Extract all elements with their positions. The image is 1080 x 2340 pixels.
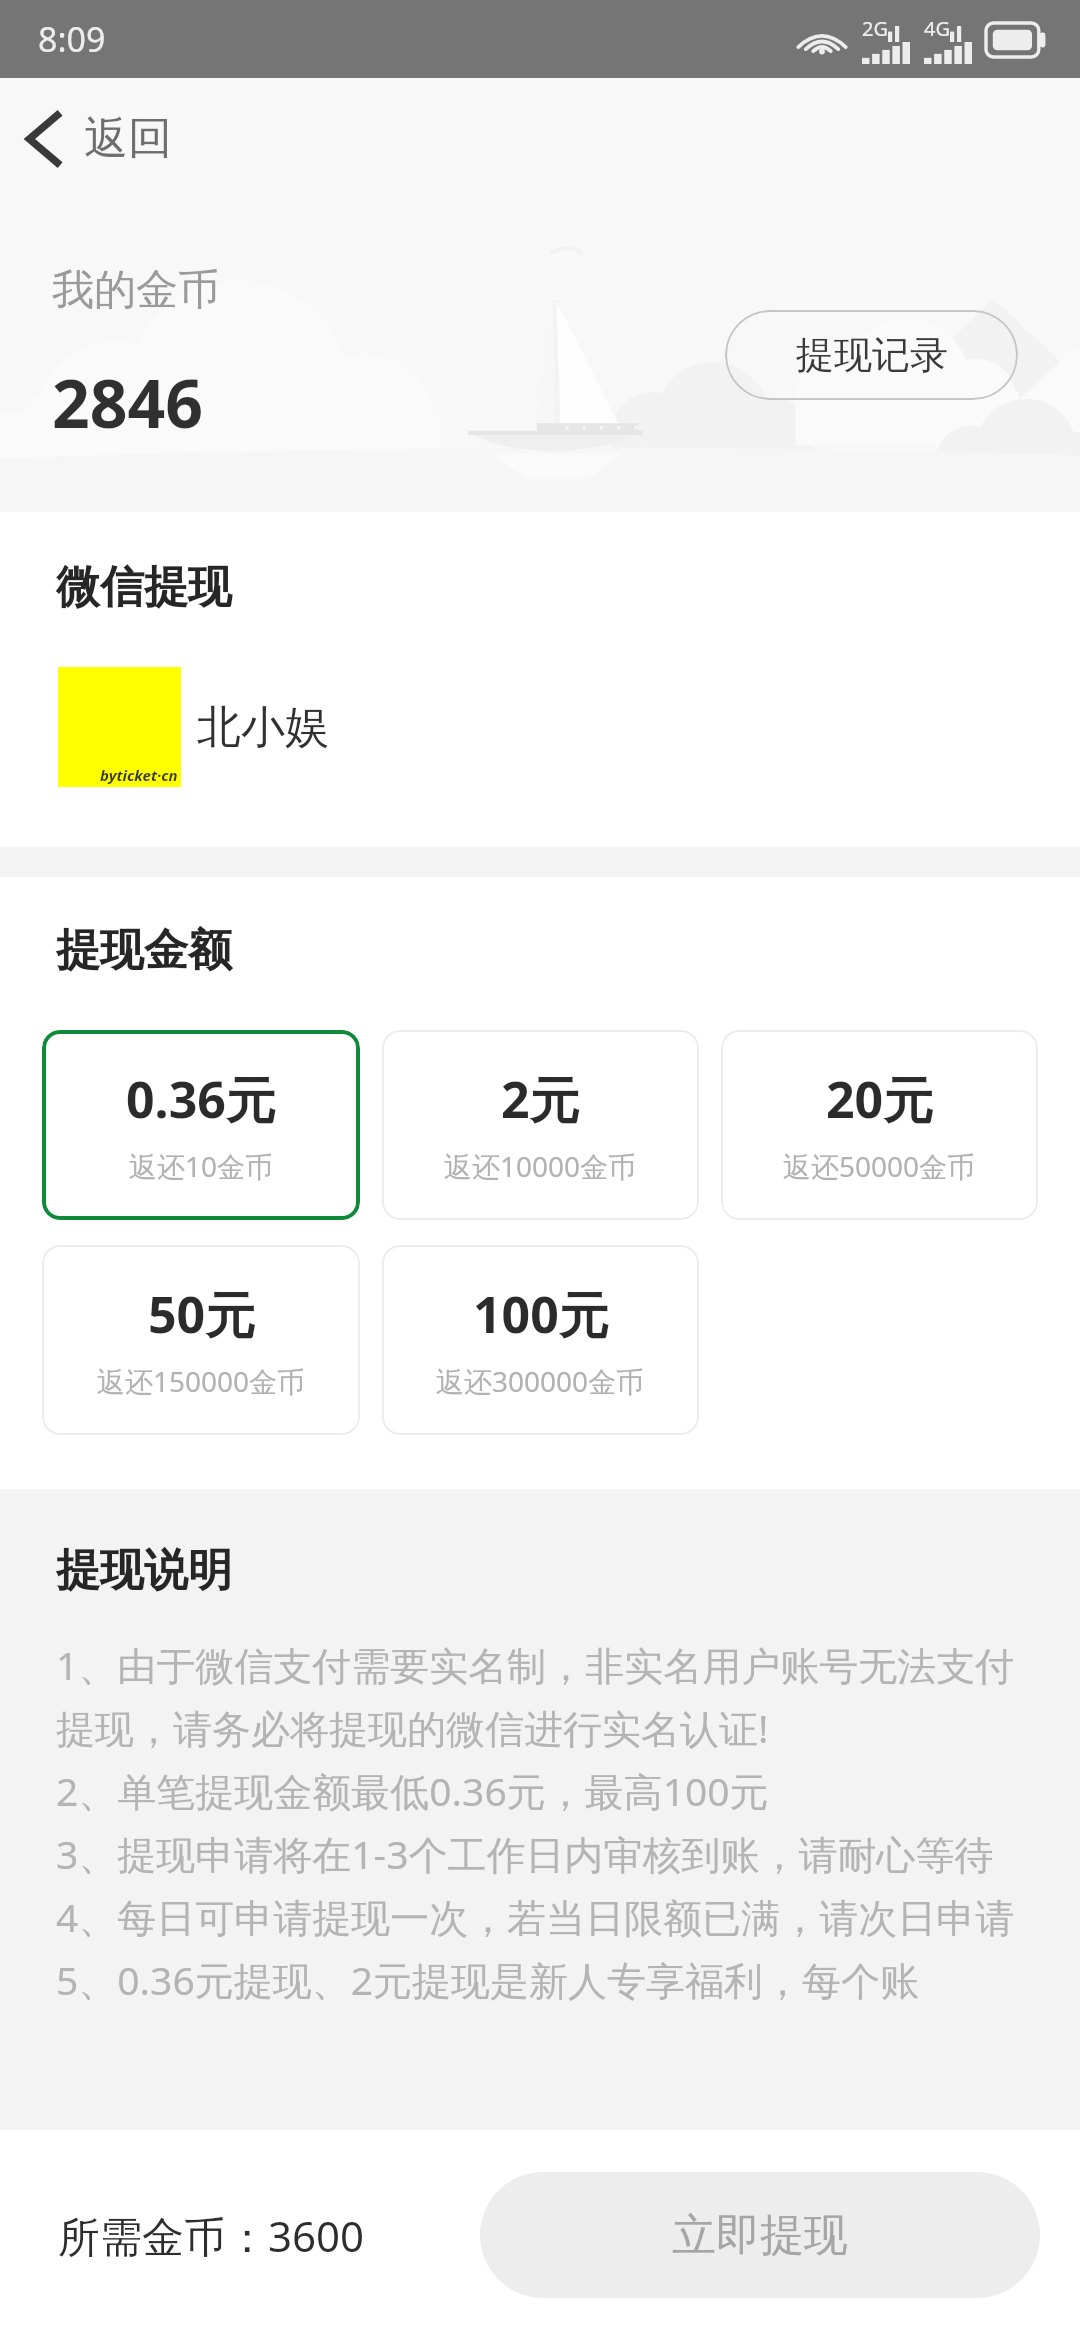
staticText: 微信提现 — [56, 560, 232, 615]
staticText: 2846 — [52, 357, 204, 447]
staticText: 返还50000金币 — [783, 1147, 976, 1185]
staticText: 2元 — [501, 1065, 580, 1133]
staticText: 8:09 — [38, 16, 106, 62]
staticText: 4G — [924, 15, 950, 42]
button[interactable]: 返回 — [0, 97, 202, 180]
staticText: 100元 — [473, 1280, 609, 1348]
button[interactable]: 100元 — [382, 1245, 699, 1435]
staticText: 返还150000金币 — [97, 1362, 306, 1400]
staticText: 返还10金币 — [129, 1147, 274, 1185]
button[interactable]: 2元 — [382, 1030, 699, 1220]
staticText: 返还10000金币 — [444, 1147, 637, 1185]
staticText: 我的金币 — [52, 264, 220, 317]
staticText: 提现金额 — [56, 923, 232, 978]
button[interactable]: 0.36元 — [42, 1030, 360, 1220]
button[interactable]: 立即提现 — [480, 2172, 1040, 2298]
staticText: 1、由于微信支付需要实名制，非实名用户账号无法支付提现，请务必将提现的微信进行实… — [56, 1638, 1050, 2006]
staticText: 提现说明 — [56, 1543, 232, 1598]
staticText: 0.36元 — [126, 1065, 276, 1133]
staticText: 返回 — [84, 111, 172, 166]
button[interactable]: 提现记录 — [725, 310, 1018, 400]
staticText: 50元 — [148, 1280, 256, 1348]
staticText: 所需金币：3600 — [58, 2207, 365, 2264]
staticText: 20元 — [826, 1065, 934, 1133]
button[interactable]: 50元 — [42, 1245, 360, 1435]
button[interactable]: 20元 — [721, 1030, 1038, 1220]
staticText: 提现记录 — [796, 331, 948, 379]
staticText: 返还300000金币 — [436, 1362, 645, 1400]
staticText: 2G — [862, 15, 888, 42]
staticText: 北小娱 — [197, 700, 329, 755]
staticText: 立即提现 — [672, 2208, 848, 2263]
button[interactable]: byticket·cn — [0, 667, 1080, 787]
staticText: byticket·cn — [100, 765, 178, 785]
